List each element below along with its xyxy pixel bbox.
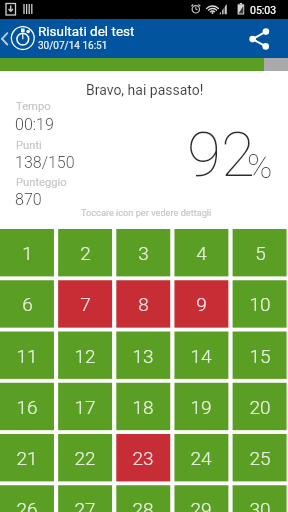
staticText: 6 [22,293,33,315]
staticText: 12 [74,345,96,367]
button[interactable]: 17 [58,383,112,430]
staticText: % [247,146,273,186]
button[interactable]: 10 [233,280,287,327]
staticText: 21 [16,447,38,469]
staticText: 9 [196,293,207,315]
staticText: 16 [16,396,38,418]
staticText: 24 [190,447,212,469]
button[interactable]: Share [246,19,288,58]
staticText: 30 [249,498,271,512]
staticText: 29 [190,498,212,512]
staticText: 20 [249,396,271,418]
staticText: 19 [190,396,212,418]
staticText: 13 [132,345,154,367]
staticText: 11 [16,345,38,367]
staticText: 27 [74,498,96,512]
staticText: 1 [22,242,33,264]
staticText: 3 [138,242,149,264]
button[interactable]: 4 [174,229,228,276]
button[interactable]: 23 [116,434,170,481]
staticText: 25 [249,447,271,469]
staticText: Punteggio [16,176,67,189]
staticText: 870 [15,190,42,209]
button[interactable]: 1 [0,229,54,276]
staticText: 28 [132,498,154,512]
button[interactable]: 2 [58,229,112,276]
staticText: 18 [132,396,154,418]
button[interactable]: 30 [233,485,287,512]
button[interactable]: 27 [58,485,112,512]
button[interactable]: 25 [233,434,287,481]
button[interactable]: 14 [174,332,228,379]
button[interactable]: 13 [116,332,170,379]
button[interactable]: 12 [58,332,112,379]
button[interactable]: 18 [116,383,170,430]
staticText: 30/07/14 16:51 [38,40,108,52]
staticText: 5 [255,242,266,264]
staticText: 92 [187,118,255,191]
staticText: 10 [249,293,271,315]
button[interactable]: 22 [58,434,112,481]
button[interactable]: 8 [116,280,170,327]
staticText: Tempo [16,100,51,113]
button[interactable]: 20 [233,383,287,430]
staticText: 22 [74,447,96,469]
button[interactable]: 5 [233,229,287,276]
button[interactable]: 15 [233,332,287,379]
staticText: Toccare icon per vedere dettagli [81,207,212,218]
staticText: Punti [16,139,42,152]
staticText: 23 [132,447,154,469]
button[interactable]: 21 [0,434,54,481]
staticText: 138/150 [15,153,75,172]
button[interactable]: 3 [116,229,170,276]
button[interactable]: 11 [0,332,54,379]
button[interactable]: 28 [116,485,170,512]
staticText: 8 [138,293,149,315]
button[interactable]: 7 [58,280,112,327]
staticText: 14 [190,345,212,367]
staticText: 05:03 [250,4,277,16]
staticText: 17 [74,396,96,418]
staticText: Risultati del test [38,23,135,39]
staticText: 15 [249,345,271,367]
button[interactable]: 16 [0,383,54,430]
button[interactable]: 6 [0,280,54,327]
button[interactable]: 26 [0,485,54,512]
staticText: Bravo, hai passato! [86,82,204,98]
staticText: 4 [196,242,207,264]
staticText: 7 [80,293,91,315]
button[interactable]: Back [0,19,36,58]
button[interactable]: 19 [174,383,228,430]
staticText: 26 [16,498,38,512]
button[interactable]: 29 [174,485,228,512]
staticText: 2 [80,242,91,264]
button[interactable]: 9 [174,280,228,327]
button[interactable]: 24 [174,434,228,481]
staticText: 00:19 [15,115,54,134]
